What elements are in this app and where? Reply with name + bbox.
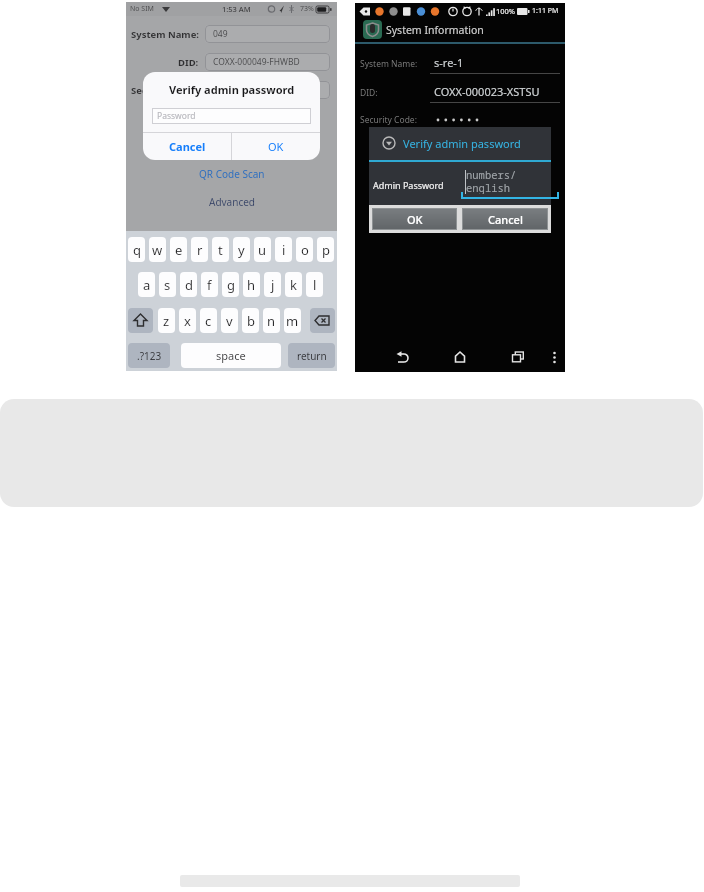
button[interactable]: h	[243, 272, 260, 297]
staticText: numbers/	[466, 168, 517, 181]
button[interactable]: .?123	[128, 343, 170, 368]
staticText: q	[133, 241, 141, 259]
staticText: QR Code Scan	[199, 167, 265, 181]
button[interactable]: n	[263, 308, 280, 333]
button[interactable]: p	[317, 237, 334, 262]
button[interactable]: s	[159, 272, 176, 297]
staticText: .?123	[137, 349, 162, 363]
staticText: s	[164, 276, 171, 294]
button[interactable]: t	[212, 237, 229, 262]
button[interactable]: OK	[232, 133, 320, 160]
button[interactable]: k	[285, 272, 302, 297]
staticText: No SIM	[130, 4, 154, 14]
button[interactable]: q	[128, 237, 145, 262]
button[interactable]: r	[191, 237, 208, 262]
button[interactable]	[310, 308, 335, 333]
staticText: Advanced	[209, 195, 255, 209]
staticText: y	[238, 241, 245, 259]
button[interactable]: x	[179, 308, 196, 333]
staticText: DID:	[360, 87, 378, 99]
staticText: l	[313, 276, 317, 294]
staticText: Cancel	[488, 212, 523, 227]
button[interactable]	[392, 348, 412, 367]
staticText: i	[282, 241, 286, 259]
staticText: DID:	[178, 56, 199, 69]
button[interactable]: d	[180, 272, 197, 297]
staticText: Password	[157, 110, 196, 122]
staticText: h	[247, 276, 256, 294]
staticText: COXX-000023-XSTSU	[434, 84, 540, 98]
staticText: e	[175, 241, 183, 259]
button[interactable]: g	[222, 272, 239, 297]
staticText: j	[271, 276, 275, 294]
staticText: a	[143, 276, 151, 294]
staticText: r	[197, 241, 203, 259]
staticText: english	[466, 181, 511, 194]
staticText: Admin Password	[373, 179, 444, 191]
staticText: System Name:	[360, 58, 418, 70]
staticText: o	[301, 241, 309, 259]
button[interactable]: z	[158, 308, 175, 333]
button[interactable]: o	[296, 237, 313, 262]
staticText: System Information	[386, 23, 484, 37]
button[interactable]: w	[149, 237, 166, 262]
staticText: f	[207, 276, 212, 294]
staticText: d	[185, 276, 193, 294]
staticText: Cancel	[169, 139, 206, 154]
staticText: z	[163, 312, 170, 330]
button[interactable]	[549, 348, 560, 367]
staticText: return	[297, 349, 327, 363]
staticText: m	[286, 312, 299, 330]
button[interactable]: c	[200, 308, 217, 333]
button[interactable]: return	[288, 343, 335, 368]
staticText: Security Code:	[131, 84, 199, 97]
staticText: 73%	[300, 4, 314, 14]
button[interactable]: m	[284, 308, 301, 333]
staticText: OK	[268, 139, 284, 154]
staticText: OK	[407, 212, 423, 227]
button[interactable]: space	[181, 343, 281, 368]
staticText: k	[290, 276, 297, 294]
button[interactable]: y	[233, 237, 250, 262]
button[interactable]	[450, 348, 470, 367]
staticText: n	[267, 312, 276, 330]
button[interactable]: j	[264, 272, 281, 297]
button[interactable]: e	[170, 237, 187, 262]
button[interactable]: f	[201, 272, 218, 297]
staticText: u	[258, 241, 267, 259]
button[interactable]: Cancel	[462, 208, 548, 230]
staticText: 049	[213, 28, 228, 40]
button[interactable]: v	[221, 308, 238, 333]
staticText: 1:53 AM	[222, 4, 251, 14]
staticText: p	[322, 241, 330, 259]
staticText: System Name:	[131, 28, 199, 41]
staticText: w	[152, 241, 163, 259]
staticText: 1:11 PM	[532, 6, 559, 16]
button[interactable]: Cancel	[143, 133, 231, 160]
staticText: b	[247, 312, 255, 330]
staticText: v	[226, 312, 233, 330]
button[interactable]	[508, 348, 528, 367]
staticText: space	[216, 348, 246, 363]
button[interactable]: b	[242, 308, 259, 333]
button[interactable]: u	[254, 237, 271, 262]
button[interactable]: a	[138, 272, 155, 297]
staticText: x	[184, 312, 191, 330]
button[interactable]: OK	[372, 208, 457, 230]
staticText: g	[227, 276, 235, 294]
staticText: s-re-1	[434, 55, 464, 69]
button[interactable]: i	[275, 237, 292, 262]
staticText: Verify admin password	[403, 136, 521, 151]
button[interactable]	[128, 308, 153, 333]
staticText: 100%	[496, 6, 516, 16]
staticText: c	[205, 312, 212, 330]
staticText: Verify admin password	[169, 82, 295, 97]
staticText: Security Code:	[360, 114, 417, 126]
staticText: COXX-000049-FHWBD	[213, 56, 300, 68]
staticText: t	[218, 241, 223, 259]
button[interactable]: l	[306, 272, 323, 297]
